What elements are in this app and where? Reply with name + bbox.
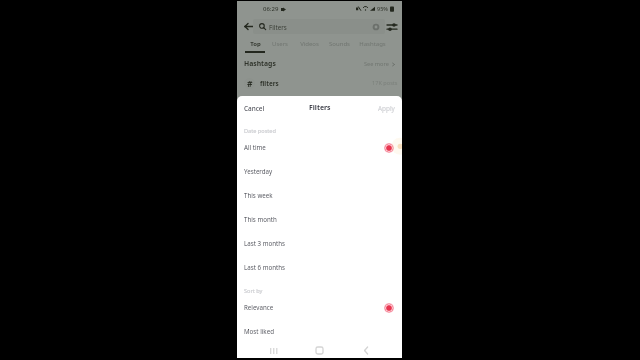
staticText: This week: [244, 191, 273, 199]
button[interactable]: Clear search: [370, 21, 381, 32]
staticText: Videos: [300, 40, 319, 48]
button[interactable]: This month: [237, 207, 402, 231]
button[interactable]: Search filters: [384, 19, 399, 34]
button[interactable]: Most liked: [237, 319, 402, 343]
button[interactable]: #: [237, 74, 402, 92]
staticText: See more: [364, 60, 389, 68]
staticText: Last 3 months: [244, 239, 286, 247]
button[interactable]: Back: [241, 19, 256, 34]
staticText: Relevance: [244, 303, 274, 311]
button[interactable]: Filters: [253, 19, 385, 34]
staticText: This month: [244, 215, 277, 223]
button[interactable]: Videos: [293, 40, 325, 56]
staticText: filters: [260, 79, 279, 88]
button[interactable]: Hashtags: [356, 40, 388, 56]
staticText: All time: [244, 143, 266, 151]
staticText: Date posted: [244, 127, 276, 135]
button[interactable]: Top: [239, 40, 271, 56]
button[interactable]: Users: [264, 40, 296, 56]
staticText: 06:29: [263, 5, 279, 13]
staticText: #: [247, 78, 253, 89]
staticText: Apply: [378, 104, 395, 113]
staticText: Sounds: [329, 40, 350, 48]
staticText: Users: [272, 40, 288, 48]
button[interactable]: Apply: [373, 100, 400, 117]
button[interactable]: See more: [364, 60, 396, 68]
staticText: 95%: [377, 5, 388, 12]
button[interactable]: Sounds: [323, 40, 355, 56]
button[interactable]: Recent apps: [265, 342, 282, 358]
staticText: Most liked: [244, 327, 274, 335]
staticText: Last 6 months: [244, 263, 286, 271]
button[interactable]: Relevance: [237, 295, 402, 319]
staticText: Yesterday: [244, 167, 273, 175]
staticText: Filters: [269, 23, 287, 31]
button[interactable]: Cancel: [239, 100, 270, 117]
staticText: Top: [250, 40, 261, 48]
staticText: 17K posts: [372, 79, 398, 87]
button[interactable]: Last 3 months: [237, 231, 402, 255]
button[interactable]: Yesterday: [237, 159, 402, 183]
button[interactable]: This week: [237, 183, 402, 207]
button[interactable]: Home: [311, 342, 328, 358]
button[interactable]: Last 6 months: [237, 255, 402, 279]
staticText: Cancel: [244, 104, 265, 113]
staticText: Hashtags: [359, 40, 386, 48]
button[interactable]: All time: [237, 135, 402, 159]
button[interactable]: Back: [357, 342, 374, 358]
staticText: Filters: [309, 103, 331, 112]
staticText: Sort by: [244, 287, 263, 295]
staticText: Hashtags: [244, 59, 276, 68]
